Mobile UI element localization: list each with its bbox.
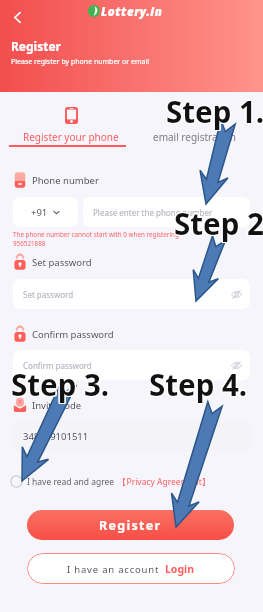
staticText: Set password: [32, 256, 92, 269]
staticText: Step 2.: [175, 203, 263, 243]
button[interactable]: Confirm password: [13, 350, 250, 380]
button[interactable]: Toggle password visibility: [229, 358, 243, 372]
button[interactable]: Register your phone: [9, 95, 133, 147]
staticText: Step 2.: [175, 204, 263, 244]
staticText: Step 1.: [166, 92, 263, 132]
button[interactable]: Toggle password visibility: [229, 287, 243, 301]
staticText: Step 2.: [175, 202, 263, 242]
staticText: Login: [165, 562, 195, 576]
staticText: Step 1.: [167, 91, 263, 131]
staticText: Step 2.: [174, 204, 263, 244]
staticText: Step 4.: [149, 363, 248, 403]
button[interactable]: 348769101511: [13, 421, 250, 452]
staticText: Step 4.: [150, 363, 249, 403]
staticText: Step 2.: [173, 204, 263, 244]
staticText: Step 2.: [173, 202, 263, 242]
staticText: Step 4.: [148, 363, 247, 403]
button[interactable]: I have read and agree: [10, 474, 211, 489]
staticText: Confirm password: [32, 328, 114, 341]
staticText: email registration: [153, 130, 237, 144]
staticText: Register your phone: [23, 130, 119, 144]
button[interactable]: Back: [4, 4, 30, 30]
staticText: 348769101511: [23, 430, 89, 443]
staticText: Step 1.: [166, 90, 263, 130]
staticText: Step 4.: [149, 365, 248, 405]
staticText: Step 3.: [11, 364, 110, 404]
staticText: Invite code: [32, 399, 82, 412]
staticText: Step 3.: [11, 363, 110, 403]
staticText: 956521888: [13, 239, 46, 248]
staticText: Step 4.: [148, 364, 247, 404]
staticText: Step 3.: [12, 363, 111, 403]
staticText: Step 2.: [174, 202, 263, 242]
button[interactable]: Register: [27, 510, 234, 540]
staticText: Phone number: [32, 174, 99, 187]
staticText: Step 3.: [11, 365, 110, 405]
staticText: Step 2.: [173, 203, 263, 243]
staticText: Set password: [23, 289, 74, 300]
staticText: Step 1.: [165, 90, 263, 130]
staticText: Step 3.: [10, 365, 109, 405]
staticText: Step 1.: [167, 92, 263, 132]
staticText: Step 1.: [165, 92, 263, 132]
staticText: Step 3.: [12, 364, 111, 404]
staticText: Step 4.: [148, 365, 247, 405]
staticText: Step 3.: [10, 363, 109, 403]
button[interactable]: Please enter the phone number: [83, 197, 250, 227]
staticText: Step 3.: [10, 364, 109, 404]
staticText: +91: [31, 206, 48, 219]
button[interactable]: Set password: [13, 279, 250, 309]
staticText: Step 1.: [166, 91, 263, 131]
staticText: Please enter the phone number: [93, 207, 213, 218]
staticText: Register: [99, 517, 162, 534]
staticText: Step 1.: [165, 91, 263, 131]
staticText: Step 1.: [167, 90, 263, 130]
staticText: Confirm password: [23, 360, 92, 371]
staticText: Step 3.: [12, 365, 111, 405]
staticText: Step 2.: [174, 203, 263, 243]
staticText: Step 4.: [150, 365, 249, 405]
staticText: Lottery.in: [101, 4, 163, 20]
staticText: Step 4.: [149, 364, 248, 404]
staticText: Step 4.: [150, 364, 249, 404]
staticText: The phone number cannot start with 0 whe…: [13, 230, 179, 239]
button[interactable]: email registration: [133, 95, 257, 147]
staticText: Please register by phone number or email: [11, 57, 150, 67]
staticText: I have an account: [67, 563, 160, 576]
staticText: Register: [11, 38, 61, 54]
staticText: I have read and agree: [27, 476, 115, 488]
button[interactable]: I have an account: [27, 553, 235, 584]
button[interactable]: +91: [13, 197, 78, 227]
staticText: 【Privacy Agreement】: [118, 476, 211, 488]
